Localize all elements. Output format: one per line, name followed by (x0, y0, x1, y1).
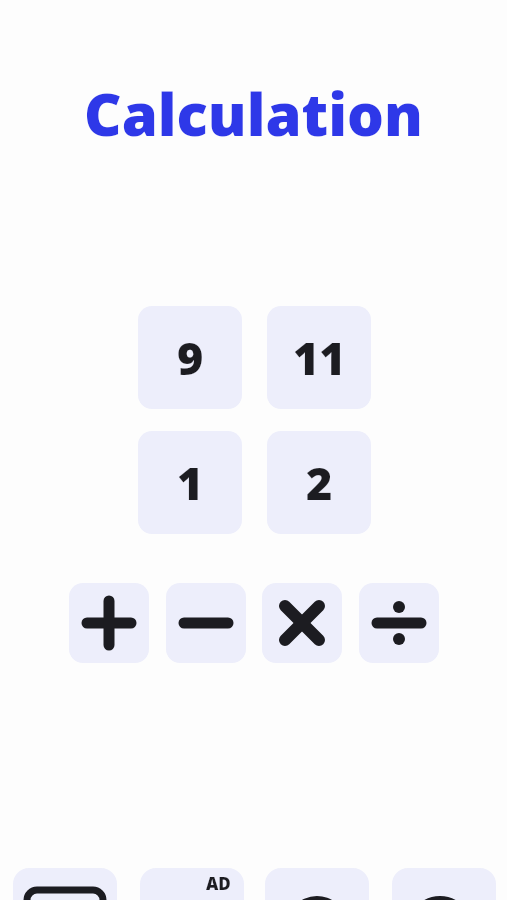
staticText: 2 (306, 452, 333, 513)
staticText: AD (206, 872, 231, 895)
button[interactable]: Undo (265, 868, 369, 900)
staticText: Calculation (0, 74, 507, 153)
button[interactable]: Watch ad (140, 868, 244, 900)
staticText: 9 (177, 327, 204, 388)
button[interactable]: Multiply (262, 583, 342, 663)
button[interactable]: Plus (69, 583, 149, 663)
button[interactable]: 2 (267, 431, 371, 534)
button[interactable]: Save (13, 868, 117, 900)
button[interactable]: 11 (267, 306, 371, 409)
staticText: 1 (177, 452, 204, 513)
button[interactable]: Hint (392, 868, 496, 900)
button[interactable]: 9 (138, 306, 242, 409)
staticText: 11 (293, 327, 346, 388)
button[interactable]: Minus (166, 583, 246, 663)
button[interactable]: Divide (359, 583, 439, 663)
button[interactable]: 1 (138, 431, 242, 534)
